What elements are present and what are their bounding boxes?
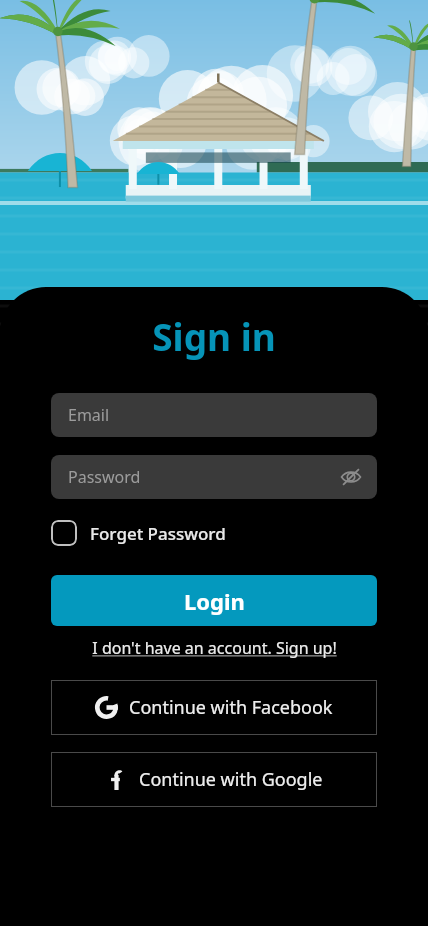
staticText: Forget Password bbox=[90, 522, 226, 545]
button[interactable]: Show password bbox=[337, 463, 365, 491]
button[interactable]: Continue with Facebook bbox=[51, 680, 377, 735]
staticText: I don't have an account. Sign up! bbox=[92, 637, 337, 659]
button[interactable]: Continue with Google bbox=[51, 752, 377, 807]
button[interactable]: Login bbox=[51, 575, 377, 626]
button[interactable]: I don't have an account. Sign up! bbox=[0, 637, 428, 659]
button[interactable]: Password bbox=[51, 455, 377, 499]
staticText: Login bbox=[184, 586, 245, 616]
staticText: Email bbox=[68, 404, 110, 426]
button[interactable]: Forget Password bbox=[51, 516, 226, 550]
staticText: Continue with Facebook bbox=[129, 695, 333, 720]
button[interactable]: Email bbox=[51, 393, 377, 437]
staticText: Sign in bbox=[0, 311, 428, 361]
staticText: Password bbox=[68, 466, 141, 488]
staticText: Continue with Google bbox=[139, 767, 323, 792]
